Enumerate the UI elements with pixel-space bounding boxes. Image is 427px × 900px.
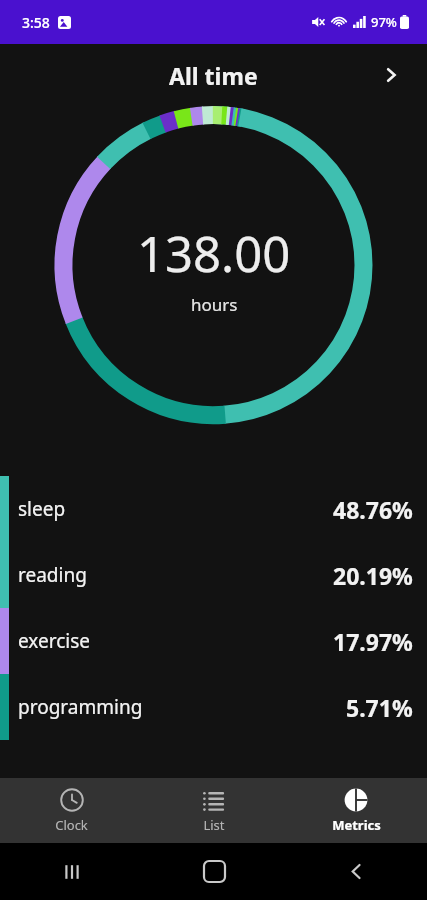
button[interactable]: Next period (371, 55, 411, 95)
staticText: 20.19% (333, 560, 413, 591)
staticText: sleep (18, 496, 66, 522)
button[interactable]: List (143, 778, 285, 843)
staticText: 97% (371, 13, 397, 31)
staticText: List (203, 816, 225, 834)
staticText: Metrics (332, 816, 381, 834)
button[interactable]: exercise (0, 608, 427, 674)
staticText: 3:58 (22, 13, 50, 32)
button[interactable]: Home (143, 843, 285, 900)
button[interactable]: reading (0, 542, 427, 608)
staticText: programming (18, 694, 143, 720)
button[interactable]: Back (285, 843, 427, 900)
button[interactable]: sleep (0, 476, 427, 542)
button[interactable]: programming (0, 674, 427, 740)
staticText: 5.71% (346, 692, 413, 723)
staticText: hours (191, 293, 238, 316)
staticText: 17.97% (333, 626, 413, 657)
staticText: reading (18, 562, 87, 588)
staticText: All time (169, 60, 258, 91)
button[interactable]: Recent apps (0, 843, 143, 900)
staticText: exercise (18, 628, 91, 654)
button[interactable]: Clock (0, 778, 143, 843)
button[interactable]: All time (0, 44, 427, 106)
button[interactable]: Metrics (285, 778, 427, 843)
staticText: Clock (55, 816, 88, 834)
staticText: 48.76% (333, 494, 413, 525)
staticText: 138.00 (137, 220, 291, 287)
